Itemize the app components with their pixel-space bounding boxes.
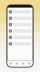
- button[interactable]: Tab: [14, 61, 20, 67]
- button[interactable]: Tab: [20, 61, 26, 67]
- button[interactable]: Tab: [26, 61, 33, 67]
- button[interactable]: Tab: [7, 61, 14, 67]
